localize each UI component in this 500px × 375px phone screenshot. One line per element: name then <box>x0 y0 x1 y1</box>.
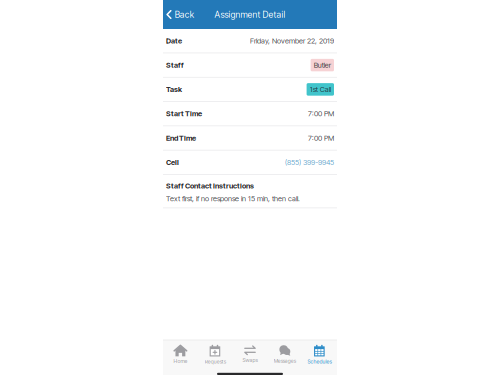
button[interactable]: Requests <box>198 345 233 363</box>
button[interactable]: (855) 399-9945 <box>285 158 334 167</box>
staticText: Butler <box>314 61 331 70</box>
staticText: Back <box>175 9 194 20</box>
staticText: Staff <box>166 61 184 70</box>
button[interactable]: Swaps <box>233 345 267 363</box>
staticText: 1st Call <box>310 85 331 94</box>
staticText: Task <box>166 85 182 94</box>
staticText: Requests <box>205 358 226 365</box>
staticText: Schedules <box>308 358 332 365</box>
button[interactable]: Home <box>163 345 198 363</box>
staticText: End Time <box>166 134 196 142</box>
staticText: Friday, November 22, 2019 <box>250 36 334 45</box>
staticText: Swaps <box>242 357 257 363</box>
staticText: Home <box>173 358 187 364</box>
button[interactable]: Schedules <box>302 345 337 363</box>
staticText: 7:00 PM <box>308 109 334 118</box>
staticText: Cell <box>166 158 179 167</box>
staticText: Staff Contact Instructions <box>166 181 254 190</box>
staticText: Start Time <box>166 109 202 118</box>
staticText: Messages <box>274 358 296 364</box>
staticText: (855) 399-9945 <box>285 158 334 167</box>
button[interactable]: Messages <box>267 345 302 363</box>
staticText: Assignment Detail <box>214 9 285 20</box>
staticText: 7:00 PM <box>308 134 334 142</box>
staticText: Text first, if no response in 15 min, th… <box>166 194 300 203</box>
button[interactable]: Back <box>163 0 200 29</box>
staticText: Date <box>166 36 182 45</box>
